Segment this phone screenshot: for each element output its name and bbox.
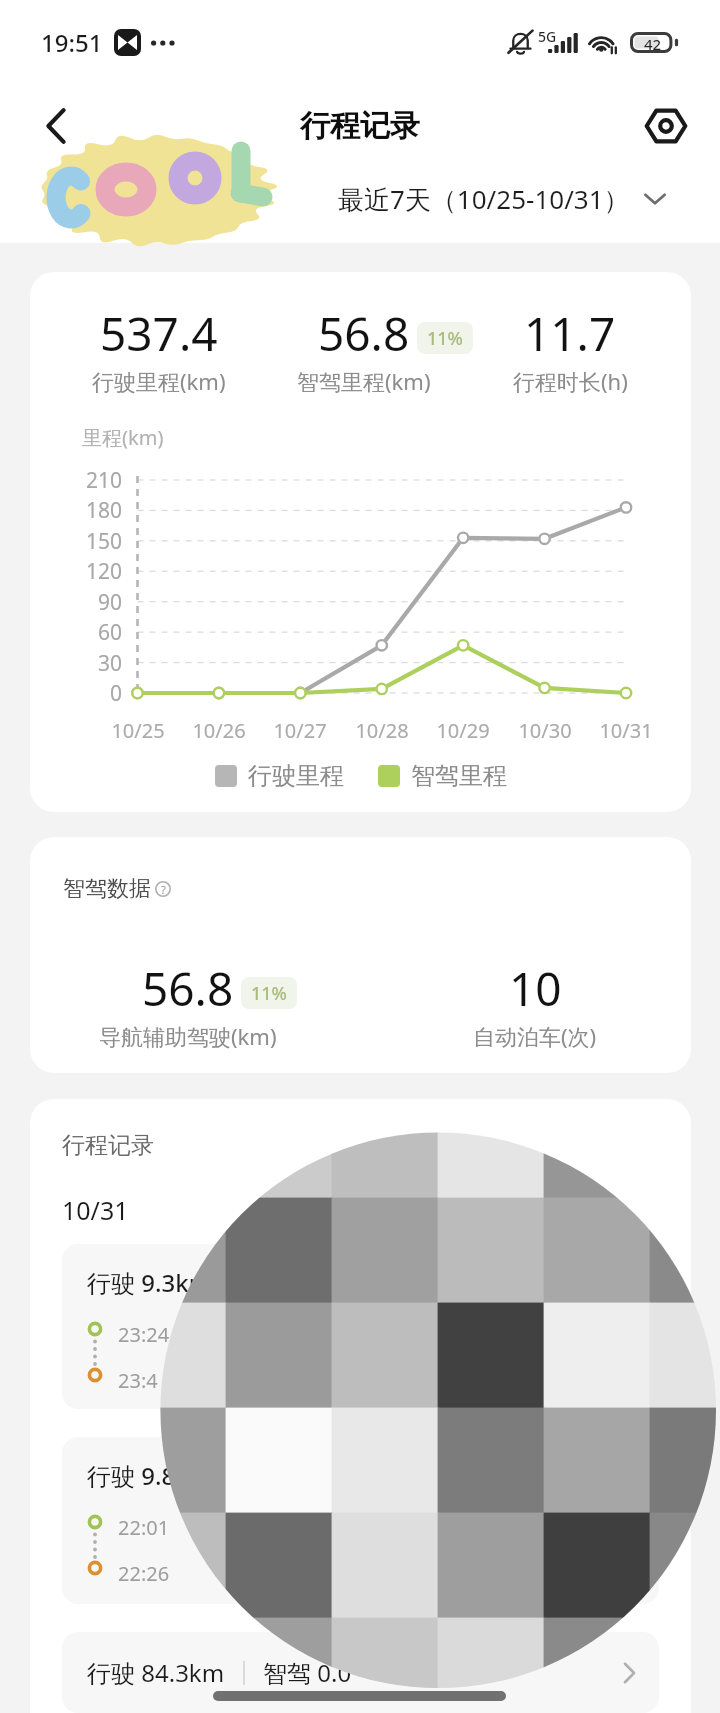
staticText: 23:24 bbox=[118, 1321, 170, 1348]
staticText: 10/27 bbox=[255, 717, 345, 744]
staticText: 150 bbox=[50, 527, 122, 556]
staticText: 行驶 9.3km bbox=[87, 1266, 212, 1299]
staticText: 行程记录 bbox=[62, 1131, 154, 1160]
button[interactable]: 最近7天（10/25-10/31） bbox=[338, 181, 666, 217]
staticText: 30 bbox=[50, 649, 122, 678]
staticText: 22:01 bbox=[118, 1514, 170, 1541]
staticText: 56.8 bbox=[318, 302, 410, 365]
staticText: 19:51 bbox=[41, 26, 103, 59]
button[interactable]: 行驶 84.3km bbox=[62, 1632, 659, 1713]
staticText: 0 bbox=[50, 679, 122, 708]
staticText: 行程时长(h) bbox=[513, 366, 628, 396]
staticText: 10/31 bbox=[62, 1193, 129, 1227]
staticText: 智驾数据 bbox=[63, 875, 151, 903]
staticText: 42 bbox=[644, 34, 662, 54]
staticText: 里程(km) bbox=[82, 424, 164, 451]
staticText: 行驶 84.3km bbox=[87, 1656, 225, 1689]
staticText: 行驶里程 bbox=[248, 761, 344, 791]
staticText: 智驾里程 bbox=[411, 761, 507, 791]
staticText: 180 bbox=[50, 496, 122, 525]
staticText: 10/25 bbox=[93, 717, 183, 744]
staticText: 智驾里程(km) bbox=[297, 366, 431, 396]
staticText: 10 bbox=[509, 957, 562, 1020]
staticText: 90 bbox=[50, 588, 122, 617]
staticText: 120 bbox=[50, 557, 122, 586]
staticText: 10/26 bbox=[174, 717, 264, 744]
staticText: 智驾 0.0 bbox=[263, 1656, 352, 1689]
staticText: 行程记录 bbox=[300, 107, 420, 145]
button[interactable]: 行驶 9.3km bbox=[62, 1244, 659, 1409]
staticText: 最近7天（10/25-10/31） bbox=[338, 181, 630, 217]
staticText: ? bbox=[161, 882, 166, 897]
staticText: 537.4 bbox=[100, 302, 218, 365]
staticText: 10/31 bbox=[581, 717, 671, 744]
staticText: 11.7 bbox=[524, 302, 616, 365]
staticText: 自动泊车(次) bbox=[473, 1021, 597, 1051]
staticText: 10/30 bbox=[500, 717, 590, 744]
staticText: 10/28 bbox=[337, 717, 427, 744]
staticText: 22:26 bbox=[118, 1560, 170, 1587]
button[interactable]: Settings bbox=[636, 96, 696, 156]
button[interactable]: Back bbox=[26, 96, 86, 156]
staticText: 导航辅助驾驶(km) bbox=[99, 1021, 277, 1051]
staticText: 56.8 bbox=[142, 957, 234, 1020]
button[interactable]: 行驶 9.8 bbox=[62, 1437, 659, 1604]
staticText: 210 bbox=[50, 466, 122, 495]
staticText: 23:4 bbox=[118, 1367, 158, 1394]
staticText: 行驶 9.8 bbox=[87, 1459, 176, 1492]
staticText: 5G bbox=[538, 27, 557, 46]
staticText: 11% bbox=[427, 326, 463, 351]
staticText: 60 bbox=[50, 618, 122, 647]
staticText: 11% bbox=[251, 981, 287, 1006]
staticText: 10/29 bbox=[418, 717, 508, 744]
staticText: 行驶里程(km) bbox=[92, 366, 226, 396]
